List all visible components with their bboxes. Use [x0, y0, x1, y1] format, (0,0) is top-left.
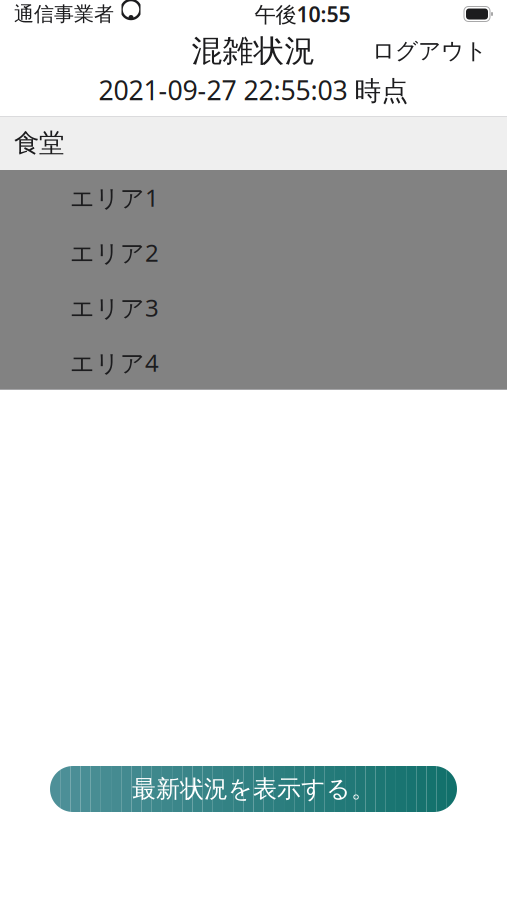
staticText: ログアウト — [372, 37, 487, 65]
staticText: 2021-09-27 22:55:03 時点 — [98, 72, 408, 108]
staticText: 午後10:55 — [254, 0, 350, 28]
button[interactable]: エリア4 — [0, 335, 507, 390]
staticText: 最新状況を表示する。 — [132, 774, 375, 804]
button[interactable]: 最新状況を表示する。 — [50, 766, 457, 812]
button[interactable]: エリア2 — [0, 225, 507, 280]
staticText: 通信事業者 — [14, 2, 114, 26]
staticText: 混雑状況 — [191, 32, 315, 70]
staticText: エリア4 — [70, 347, 159, 378]
button[interactable]: エリア1 — [0, 170, 507, 225]
button[interactable]: エリア3 — [0, 280, 507, 335]
staticText: エリア3 — [70, 292, 159, 323]
staticText: エリア2 — [70, 237, 159, 268]
staticText: エリア1 — [70, 182, 159, 213]
button[interactable]: ログアウト — [362, 29, 497, 73]
staticText: 食堂 — [14, 127, 64, 158]
